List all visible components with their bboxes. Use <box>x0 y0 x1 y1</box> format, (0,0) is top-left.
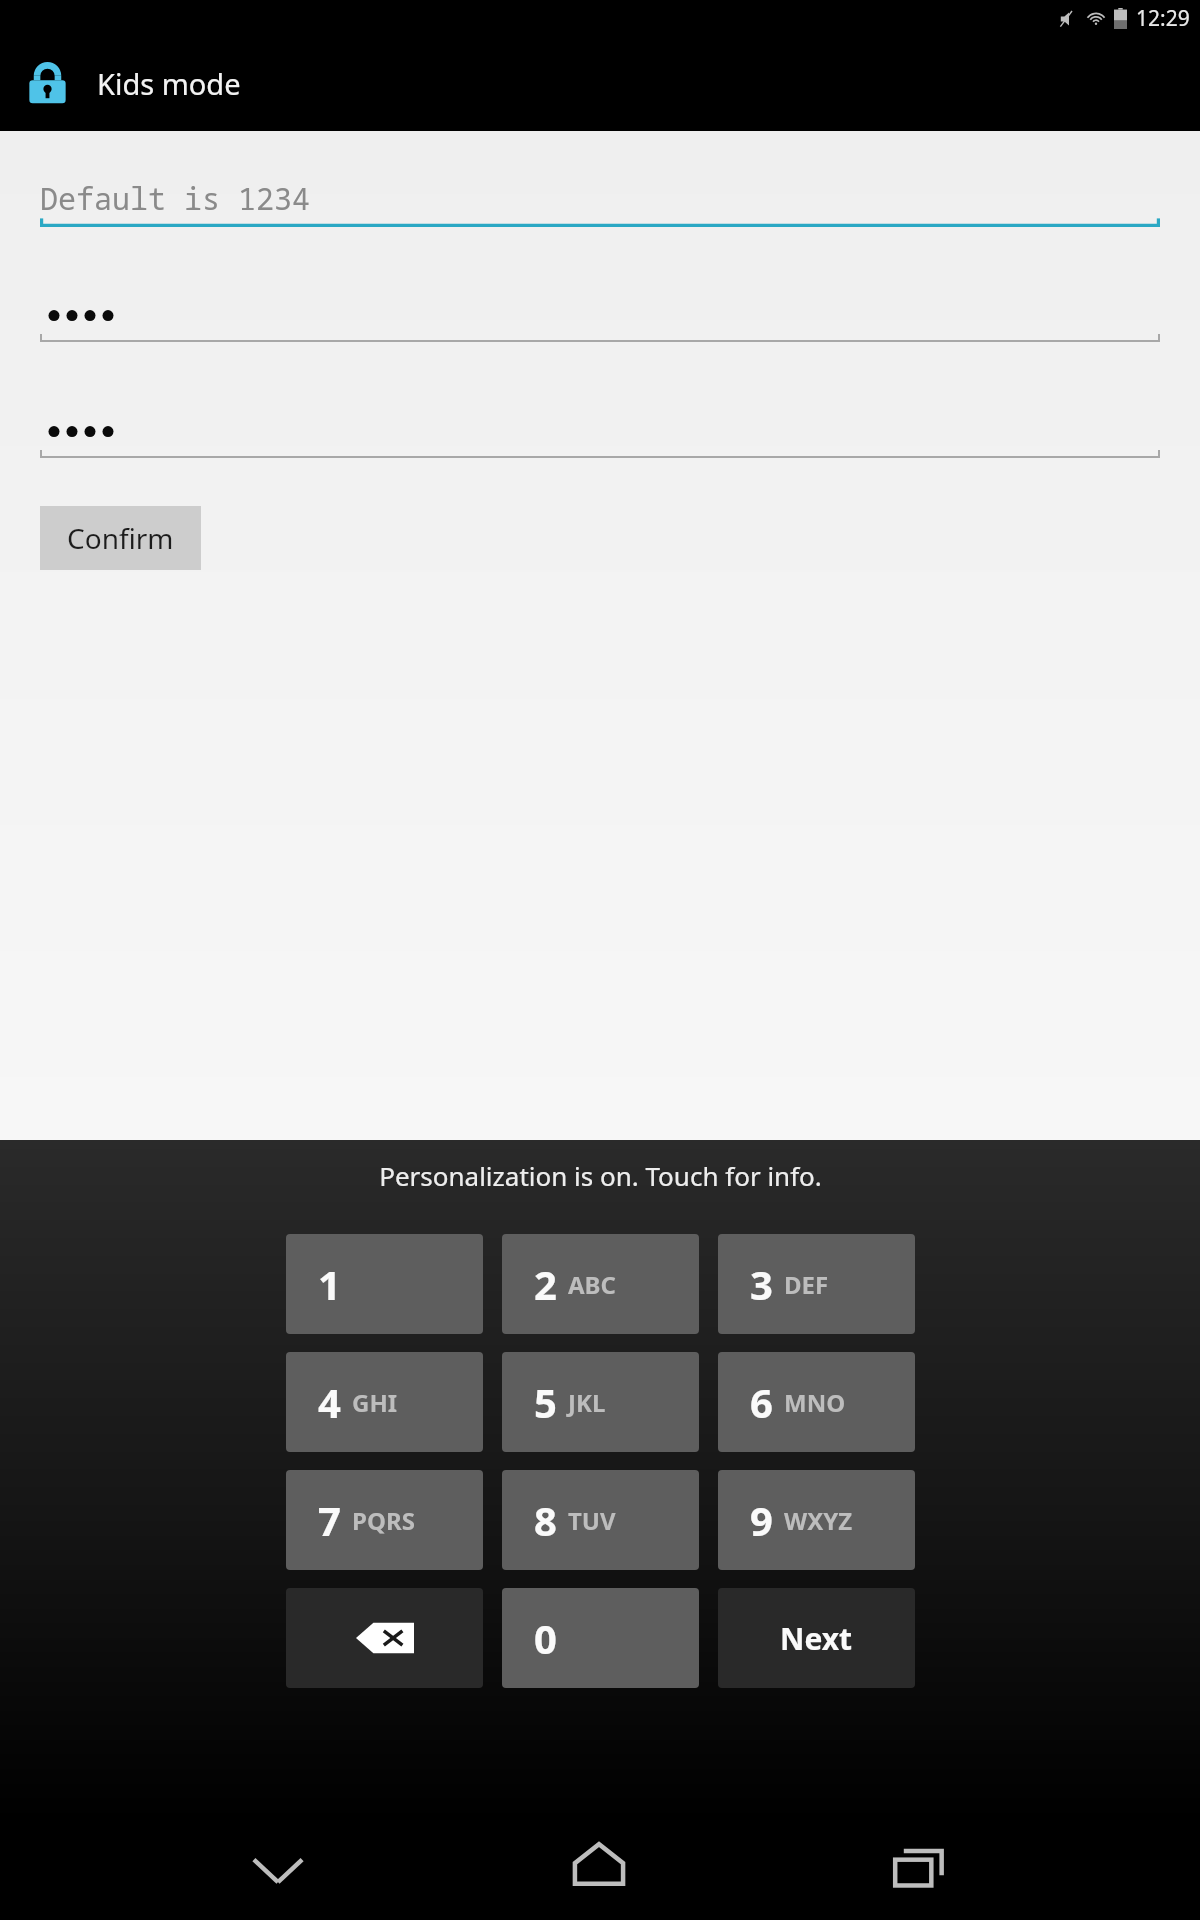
staticText: 5 <box>534 1375 557 1429</box>
button[interactable]: Recent apps <box>878 1827 964 1913</box>
button[interactable]: 1 <box>286 1234 483 1334</box>
staticText: 9 <box>750 1493 773 1547</box>
staticText: GHI <box>352 1386 398 1419</box>
staticText: 12:29 <box>1136 4 1190 33</box>
staticText: Confirm <box>67 519 174 557</box>
staticText: Personalization is on. Touch for info. <box>379 1158 822 1193</box>
button[interactable]: 0 <box>502 1588 699 1688</box>
button[interactable]: 3 <box>718 1234 915 1334</box>
button[interactable]: 2 <box>502 1234 699 1334</box>
staticText: 2 <box>534 1257 557 1311</box>
staticText: DEF <box>784 1268 829 1301</box>
staticText: 1 <box>318 1257 341 1311</box>
button[interactable]: 5 <box>502 1352 699 1452</box>
staticText: 7 <box>318 1493 341 1547</box>
button[interactable]: Next <box>718 1588 915 1688</box>
staticText: 4 <box>318 1375 341 1429</box>
staticText: ABC <box>568 1268 616 1301</box>
button[interactable]: Confirm <box>40 506 201 570</box>
staticText: Kids mode <box>97 64 241 103</box>
button[interactable]: Home <box>556 1827 642 1913</box>
staticText: 8 <box>534 1493 557 1547</box>
button[interactable]: 4 <box>286 1352 483 1452</box>
button[interactable]: 6 <box>718 1352 915 1452</box>
staticText: PQRS <box>352 1504 415 1537</box>
staticText: 0 <box>534 1611 557 1665</box>
button[interactable] <box>40 408 1160 458</box>
button[interactable]: Default is 1234 <box>40 177 1160 227</box>
staticText: WXYZ <box>784 1504 853 1537</box>
button[interactable]: Hide keyboard <box>235 1827 321 1913</box>
button[interactable]: 9 <box>718 1470 915 1570</box>
button[interactable] <box>40 292 1160 342</box>
staticText: Default is 1234 <box>40 178 310 219</box>
staticText: MNO <box>784 1386 846 1419</box>
staticText: Next <box>780 1618 853 1659</box>
staticText: 3 <box>750 1257 773 1311</box>
button[interactable]: Personalization is on. Touch for info. <box>0 1158 1200 1193</box>
button[interactable]: 7 <box>286 1470 483 1570</box>
staticText: TUV <box>568 1504 616 1537</box>
staticText: 6 <box>750 1375 773 1429</box>
other: Kids mode lock <box>20 56 75 111</box>
staticText: JKL <box>568 1386 606 1419</box>
button[interactable]: Delete <box>286 1588 483 1688</box>
button[interactable]: 8 <box>502 1470 699 1570</box>
